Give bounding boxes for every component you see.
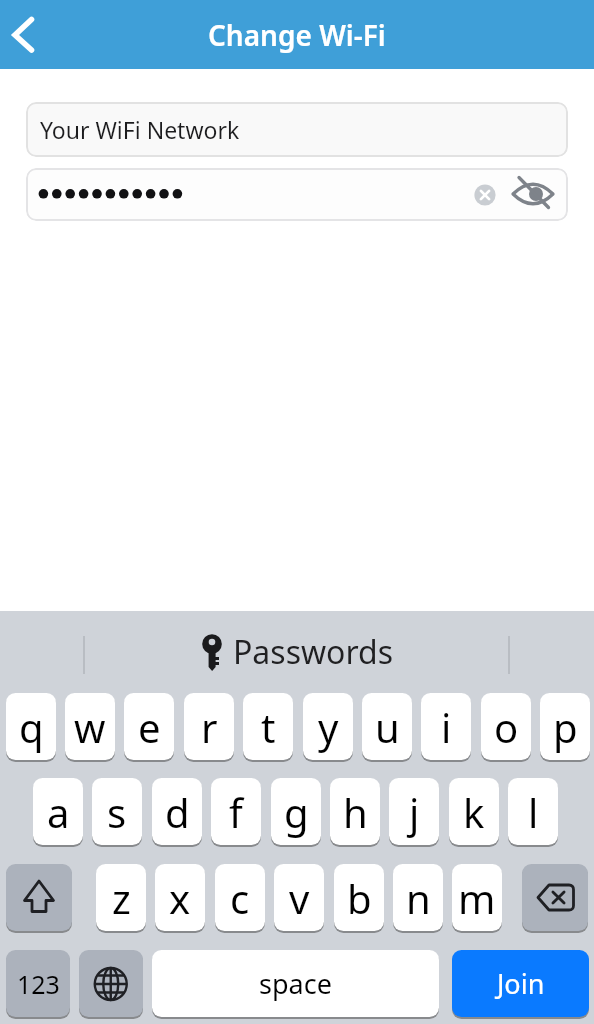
staticText: p	[553, 700, 578, 754]
button[interactable]: Join	[452, 950, 589, 1017]
button[interactable]: y	[303, 693, 353, 760]
button[interactable]: Your WiFi Network	[26, 102, 568, 157]
button[interactable]	[79, 950, 143, 1017]
staticText: o	[494, 700, 519, 754]
staticText: q	[19, 700, 44, 754]
button[interactable]: f	[211, 778, 261, 845]
staticText: s	[107, 785, 127, 839]
button[interactable]: v	[274, 864, 324, 931]
staticText: i	[441, 700, 452, 754]
staticText: a	[47, 785, 70, 839]
button[interactable]: h	[330, 778, 380, 845]
button[interactable]: q	[6, 693, 56, 760]
button[interactable]	[522, 864, 588, 931]
staticText: m	[458, 871, 496, 925]
staticText: space	[259, 965, 332, 1002]
button[interactable]: space	[152, 950, 439, 1017]
button[interactable]: u	[362, 693, 412, 760]
staticText: u	[375, 700, 400, 754]
button[interactable]: l	[508, 778, 558, 845]
button[interactable]: z	[96, 864, 146, 931]
button[interactable]: e	[124, 693, 174, 760]
staticText: g	[284, 785, 309, 839]
button[interactable]: i	[421, 693, 471, 760]
button[interactable]: a	[33, 778, 83, 845]
staticText: Your WiFi Network	[40, 114, 240, 145]
staticText: Join	[497, 965, 545, 1002]
button[interactable]: 123	[6, 950, 70, 1017]
staticText: Passwords	[233, 630, 394, 674]
staticText: d	[165, 785, 190, 839]
button[interactable]: n	[393, 864, 443, 931]
staticText: j	[409, 785, 420, 839]
button[interactable]	[469, 179, 501, 211]
button[interactable]	[26, 168, 568, 221]
staticText: t	[261, 700, 276, 754]
staticText: e	[138, 700, 161, 754]
staticText: b	[347, 871, 372, 925]
button[interactable]	[0, 0, 60, 69]
button[interactable]: x	[155, 864, 205, 931]
staticText: h	[343, 785, 368, 839]
button[interactable]: w	[65, 693, 115, 760]
staticText: x	[169, 871, 191, 925]
staticText: f	[229, 785, 243, 839]
staticText: Change Wi-Fi	[208, 16, 386, 54]
button[interactable]: d	[152, 778, 202, 845]
staticText: r	[201, 700, 218, 754]
button[interactable]: r	[184, 693, 234, 760]
staticText: v	[289, 871, 310, 925]
staticText: l	[528, 785, 539, 839]
staticText: c	[230, 871, 250, 925]
staticText: 123	[17, 967, 60, 1001]
button[interactable]: p	[540, 693, 590, 760]
button[interactable]: s	[92, 778, 142, 845]
button[interactable]: b	[334, 864, 384, 931]
button[interactable]	[6, 864, 72, 931]
button[interactable]: k	[449, 778, 499, 845]
staticText: y	[318, 700, 339, 754]
button[interactable]: Passwords	[0, 611, 594, 693]
staticText: k	[463, 785, 485, 839]
button[interactable]: t	[243, 693, 293, 760]
staticText: w	[74, 700, 106, 754]
button[interactable]: g	[271, 778, 321, 845]
button[interactable]: c	[215, 864, 265, 931]
staticText: z	[112, 871, 131, 925]
button[interactable]	[509, 172, 557, 216]
button[interactable]: j	[389, 778, 439, 845]
staticText: n	[406, 871, 431, 925]
button[interactable]: o	[481, 693, 531, 760]
button[interactable]: m	[452, 864, 502, 931]
